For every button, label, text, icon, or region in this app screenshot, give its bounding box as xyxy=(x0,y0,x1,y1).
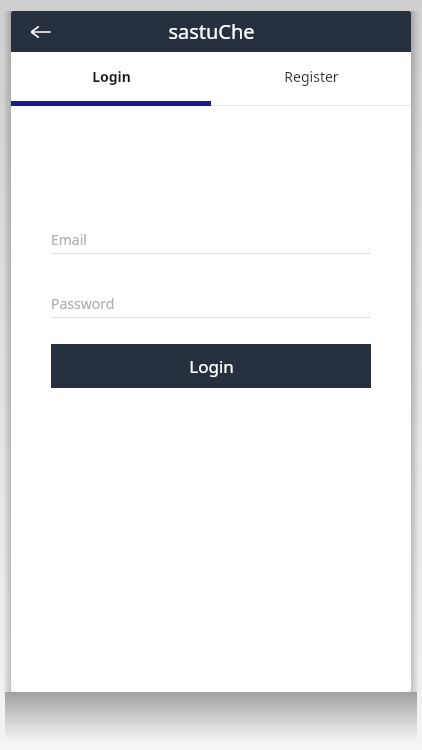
button[interactable]: Login xyxy=(51,344,371,388)
button[interactable]: Back xyxy=(21,12,61,52)
staticText: Login xyxy=(92,67,131,86)
button[interactable]: Login xyxy=(11,52,211,100)
staticText: sastuChe xyxy=(168,18,255,45)
staticText: Password xyxy=(51,294,115,313)
staticText: Register xyxy=(284,67,339,86)
staticText: Login xyxy=(189,355,234,378)
button[interactable]: Email xyxy=(51,225,371,253)
button[interactable]: Password xyxy=(51,289,371,317)
staticText: Email xyxy=(51,230,87,249)
button[interactable]: Register xyxy=(211,52,411,100)
